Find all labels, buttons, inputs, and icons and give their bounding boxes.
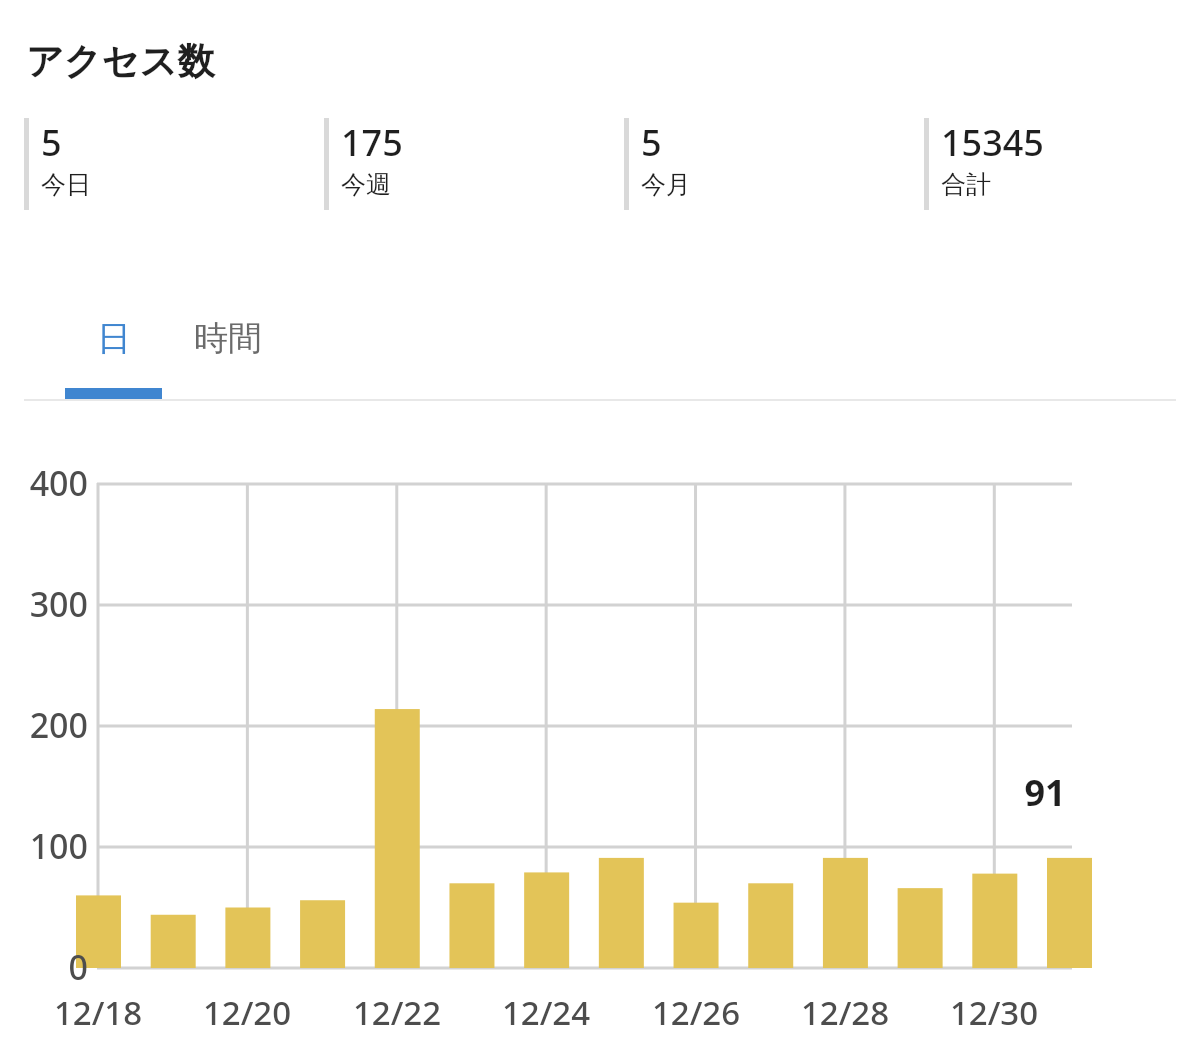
button[interactable]: 5 bbox=[624, 118, 900, 212]
staticText: 今月 bbox=[641, 169, 691, 200]
staticText: 200 bbox=[10, 702, 88, 748]
staticText: 5 bbox=[641, 118, 662, 167]
staticText: 12/30 bbox=[919, 990, 1069, 1035]
staticText: 12/24 bbox=[471, 990, 621, 1035]
staticText: 15345 bbox=[941, 118, 1044, 167]
button[interactable]: 5 bbox=[24, 118, 300, 212]
staticText: 今日 bbox=[41, 169, 91, 200]
staticText: 時間 bbox=[194, 317, 262, 360]
button[interactable]: 15345 bbox=[924, 118, 1200, 212]
staticText: アクセス数 bbox=[26, 38, 215, 85]
staticText: 合計 bbox=[941, 169, 991, 200]
staticText: 5 bbox=[41, 118, 62, 167]
staticText: 400 bbox=[10, 460, 88, 506]
staticText: 300 bbox=[10, 581, 88, 627]
staticText: 今週 bbox=[341, 169, 391, 200]
staticText: 日 bbox=[97, 317, 131, 360]
button[interactable]: 日 bbox=[65, 288, 162, 388]
staticText: 12/18 bbox=[23, 990, 173, 1035]
staticText: 12/20 bbox=[172, 990, 322, 1035]
staticText: 100 bbox=[10, 823, 88, 869]
staticText: 12/28 bbox=[770, 990, 920, 1035]
button[interactable]: 175 bbox=[324, 118, 600, 212]
staticText: 0 bbox=[10, 944, 88, 990]
staticText: 12/22 bbox=[322, 990, 472, 1035]
staticText: 175 bbox=[341, 118, 403, 167]
staticText: 12/26 bbox=[621, 990, 771, 1035]
staticText: 91 bbox=[1010, 768, 1080, 817]
button[interactable]: 時間 bbox=[162, 288, 294, 388]
